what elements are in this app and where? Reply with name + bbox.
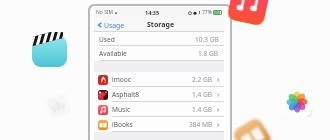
staticText: Storage — [147, 20, 175, 30]
staticText: Music — [112, 105, 131, 114]
staticText: Asphalt8 — [112, 90, 140, 99]
button[interactable]: imooc — [94, 72, 224, 87]
button[interactable]: Available — [94, 46, 224, 61]
button[interactable]: Asphalt8 — [94, 87, 224, 102]
staticText: No SIM — [96, 9, 114, 16]
button[interactable]: Used — [94, 32, 224, 46]
button[interactable]: Back to Usage — [96, 18, 125, 32]
staticText: 77% — [202, 9, 212, 16]
other: Music — [227, 0, 270, 26]
staticText: 14:35 — [145, 9, 160, 16]
button[interactable]: iBooks — [94, 117, 224, 132]
staticText: iBooks — [112, 120, 133, 129]
staticText: 1.8 GB — [198, 49, 219, 58]
staticText: Available — [99, 49, 127, 58]
staticText: 384 MB — [189, 120, 213, 129]
other: Photos — [282, 87, 312, 117]
staticText: Used — [99, 35, 115, 44]
staticText: 2.2 GB — [192, 75, 213, 84]
staticText: 10.3 GB — [195, 35, 219, 44]
staticText: 1.4 GB — [192, 90, 213, 99]
button[interactable]: Music — [94, 102, 224, 117]
other: iBooks — [231, 116, 274, 140]
staticText: Usage — [104, 21, 125, 30]
staticText: imooc — [112, 75, 132, 84]
other: Video app — [32, 36, 67, 67]
staticText: 1.4 GB — [192, 105, 213, 114]
